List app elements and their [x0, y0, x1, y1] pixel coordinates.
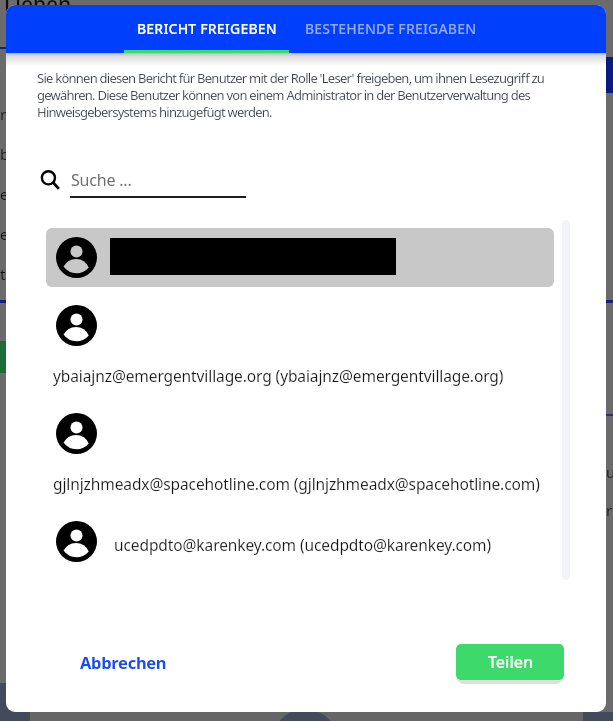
staticText: Teilen	[488, 651, 533, 673]
staticText: BERICHT FREIGEBEN	[137, 19, 277, 38]
button[interactable]: Abbrechen	[70, 645, 177, 679]
staticText: u	[606, 462, 613, 482]
staticText: ucedpdto@karenkey.com (ucedpdto@karenkey…	[114, 534, 492, 555]
staticText: Lieben	[4, 0, 72, 19]
staticText: b	[0, 144, 10, 184]
staticText: Suche ...	[71, 169, 132, 191]
staticText: t	[0, 264, 6, 304]
button[interactable]: Suche	[41, 169, 247, 198]
staticText: BESTEHENDE FREIGABEN	[305, 19, 477, 38]
staticText: e	[0, 224, 9, 264]
staticText: Abbrechen	[80, 651, 167, 673]
button[interactable]: Teilen	[456, 644, 564, 680]
staticText: ybaiajnz@emergentvillage.org (ybaiajnz@e…	[53, 365, 504, 386]
button[interactable]: ucedpdto@karenkey.com (ucedpdto@karenkey…	[6, 516, 606, 576]
staticText: r	[606, 500, 613, 520]
button[interactable]	[46, 228, 554, 287]
staticText: Sie können diesen Bericht für Benutzer m…	[37, 69, 549, 121]
staticText: e	[0, 184, 9, 224]
button[interactable]: ybaiajnz@emergentvillage.org (ybaiajnz@e…	[6, 300, 606, 400]
button[interactable]: BERICHT FREIGEBEN	[124, 5, 289, 53]
other: Suche	[41, 171, 60, 190]
button[interactable]: BESTEHENDE FREIGABEN	[295, 5, 486, 53]
staticText: r	[0, 104, 7, 144]
button[interactable]: gjlnjzhmeadx@spacehotline.com (gjlnjzhme…	[6, 408, 606, 508]
staticText: gjlnjzhmeadx@spacehotline.com (gjlnjzhme…	[53, 473, 540, 494]
